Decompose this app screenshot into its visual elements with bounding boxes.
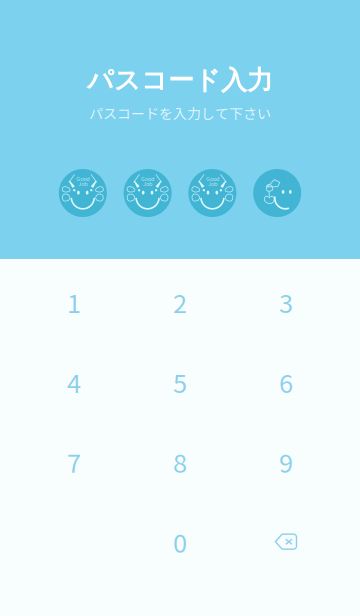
button[interactable]: 0 (127, 502, 233, 582)
button[interactable]: 7 (21, 422, 127, 502)
staticText: Good (141, 174, 154, 183)
button[interactable]: 5 (127, 342, 233, 422)
button[interactable]: 2 (127, 262, 233, 342)
staticText: Good (76, 174, 89, 183)
button[interactable]: 1 (21, 262, 127, 342)
staticText: Job (208, 179, 217, 188)
button[interactable]: 3 (233, 262, 339, 342)
staticText: パスコードを入力して下さい (89, 103, 271, 123)
button[interactable]: Delete (233, 502, 339, 582)
button[interactable]: 9 (233, 422, 339, 502)
staticText: Good (206, 174, 219, 183)
button[interactable]: 8 (127, 422, 233, 502)
staticText: 4 (67, 363, 81, 400)
staticText: 5 (173, 363, 187, 400)
staticText: 0 (173, 523, 187, 560)
staticText: 3 (279, 284, 293, 320)
staticText: 6 (279, 363, 293, 400)
staticText: 8 (173, 443, 187, 480)
staticText: Job (143, 179, 152, 188)
button[interactable]: 6 (233, 342, 339, 422)
staticText: パスコード入力 (87, 64, 273, 97)
button[interactable]: 4 (21, 342, 127, 422)
staticText: 1 (67, 284, 81, 320)
staticText: Job (78, 179, 87, 188)
staticText: 7 (67, 443, 81, 480)
staticText: 9 (279, 443, 293, 480)
staticText: 2 (173, 284, 187, 320)
